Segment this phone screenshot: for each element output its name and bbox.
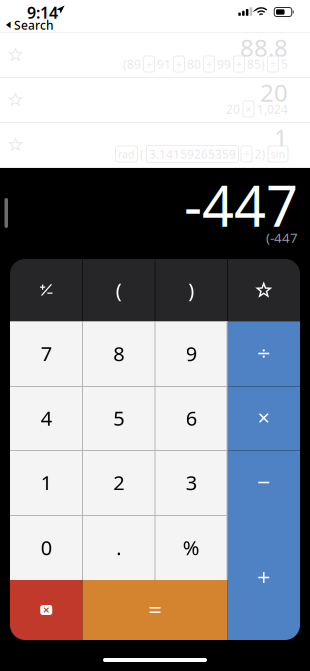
staticText: ÷ bbox=[243, 147, 249, 161]
staticText: 5 bbox=[281, 56, 288, 72]
staticText: 9:14 bbox=[27, 2, 58, 23]
staticText: 85) bbox=[247, 56, 265, 72]
staticText: 6 bbox=[186, 405, 197, 431]
staticText: 3.14159265359 bbox=[149, 146, 236, 162]
staticText: × bbox=[245, 102, 251, 116]
staticText: 99 bbox=[217, 56, 231, 72]
button[interactable]: 3 bbox=[155, 450, 227, 515]
staticText: 9 bbox=[186, 340, 197, 367]
staticText: Search bbox=[14, 17, 54, 33]
staticText: ( bbox=[140, 146, 144, 162]
button[interactable]: 2 bbox=[82, 450, 155, 515]
button[interactable]: 20 bbox=[0, 78, 310, 123]
staticText: sin bbox=[270, 147, 285, 161]
button[interactable]: Plus minus bbox=[10, 259, 82, 321]
button[interactable]: Add bbox=[227, 515, 300, 640]
staticText: % bbox=[183, 534, 200, 561]
staticText: -447 bbox=[184, 168, 298, 242]
button[interactable]: 8 bbox=[82, 321, 155, 386]
button[interactable]: 6 bbox=[155, 386, 227, 450]
button[interactable]: 9 bbox=[155, 321, 227, 386]
button[interactable]: 88.8 bbox=[0, 33, 310, 78]
button[interactable]: 4 bbox=[10, 386, 82, 450]
staticText: 2) bbox=[254, 146, 265, 162]
staticText: + bbox=[146, 57, 152, 71]
button[interactable]: ( bbox=[82, 259, 155, 321]
staticText: 0 bbox=[41, 534, 52, 561]
staticText: 1 bbox=[274, 122, 288, 153]
staticText: + bbox=[236, 57, 242, 71]
staticText: + bbox=[206, 57, 212, 71]
button[interactable]: Search bbox=[0, 18, 60, 32]
button[interactable]: % bbox=[155, 515, 227, 580]
staticText: ) bbox=[188, 277, 194, 303]
staticText: 91 bbox=[157, 56, 171, 72]
staticText: 2 bbox=[113, 469, 124, 496]
staticText: 80 bbox=[187, 56, 201, 72]
staticText: 88.8 bbox=[240, 32, 288, 63]
staticText: ÷ bbox=[270, 57, 276, 71]
button[interactable]: ) bbox=[155, 259, 227, 321]
staticText: (89 bbox=[123, 56, 141, 72]
button[interactable]: 5 bbox=[82, 386, 155, 450]
staticText: 5 bbox=[113, 405, 124, 431]
staticText: 8 bbox=[113, 340, 124, 367]
button[interactable]: Delete bbox=[10, 580, 82, 640]
button[interactable]: Equals bbox=[82, 580, 227, 640]
button[interactable]: Divide bbox=[227, 321, 300, 386]
staticText: ( bbox=[116, 277, 122, 303]
button[interactable]: 0 bbox=[10, 515, 82, 580]
button[interactable]: . bbox=[82, 515, 155, 580]
button[interactable]: Favourites bbox=[227, 259, 300, 321]
button[interactable]: 1 bbox=[0, 123, 310, 168]
staticText: 1 bbox=[41, 469, 52, 496]
staticText: 4 bbox=[41, 405, 52, 431]
staticText: 20 bbox=[226, 101, 240, 117]
button[interactable]: 1 bbox=[10, 450, 82, 515]
button[interactable]: Subtract bbox=[227, 450, 300, 515]
staticText: 20 bbox=[260, 77, 288, 108]
button[interactable]: Multiply bbox=[227, 386, 300, 450]
staticText: . bbox=[116, 534, 121, 561]
staticText: (-447 bbox=[266, 229, 298, 246]
button[interactable]: 7 bbox=[10, 321, 82, 386]
staticText: 1,024 bbox=[257, 101, 288, 117]
staticText: + bbox=[176, 57, 182, 71]
staticText: rad bbox=[118, 147, 135, 161]
staticText: 3 bbox=[186, 469, 197, 496]
staticText: 7 bbox=[41, 340, 52, 367]
